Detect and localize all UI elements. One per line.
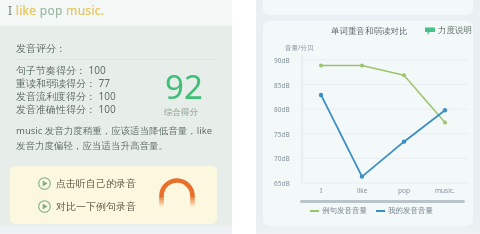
button[interactable]: 点击听自己的录音 xyxy=(38,175,136,191)
button[interactable]: 对比一下例句录音 xyxy=(38,198,136,214)
staticText: 65dB xyxy=(274,179,290,188)
staticText: I xyxy=(320,186,323,195)
staticText: like xyxy=(357,186,368,195)
staticText: 90dB xyxy=(274,56,290,65)
staticText: 80dB xyxy=(274,105,290,114)
staticText: music. xyxy=(435,186,455,195)
staticText: 句子节奏得分： 100 xyxy=(16,63,106,76)
staticText: 发音准确性得分： 100 xyxy=(16,102,116,115)
staticText: 综合得分 xyxy=(164,107,198,118)
staticText: pop xyxy=(398,186,410,195)
staticText: 例句发音音量 xyxy=(322,206,367,215)
staticText: music 发音力度稍重，应该适当降低音量，like 发音力度偏轻，应当适当升高… xyxy=(16,124,213,152)
staticText: 85dB xyxy=(274,81,290,90)
staticText: 92 xyxy=(165,64,203,109)
staticText: 75dB xyxy=(274,130,290,139)
staticText: 点击听自己的录音 xyxy=(56,177,136,190)
staticText: 重读和弱读得分： 77 xyxy=(16,76,111,89)
staticText: 对比一下例句录音 xyxy=(56,200,136,213)
staticText: 70dB xyxy=(274,154,290,163)
staticText: 发音流利度得分： 100 xyxy=(16,89,116,102)
staticText: 力度说明 xyxy=(438,25,472,36)
staticText: I like pop music. xyxy=(8,2,105,18)
staticText: 发音评分： xyxy=(16,42,66,55)
staticText: 我的发音音量 xyxy=(388,206,433,215)
button[interactable]: 力度说明 xyxy=(425,24,472,37)
staticText: 单词重音和弱读对比 xyxy=(331,26,408,37)
staticText: 音量/分贝 xyxy=(285,43,314,52)
